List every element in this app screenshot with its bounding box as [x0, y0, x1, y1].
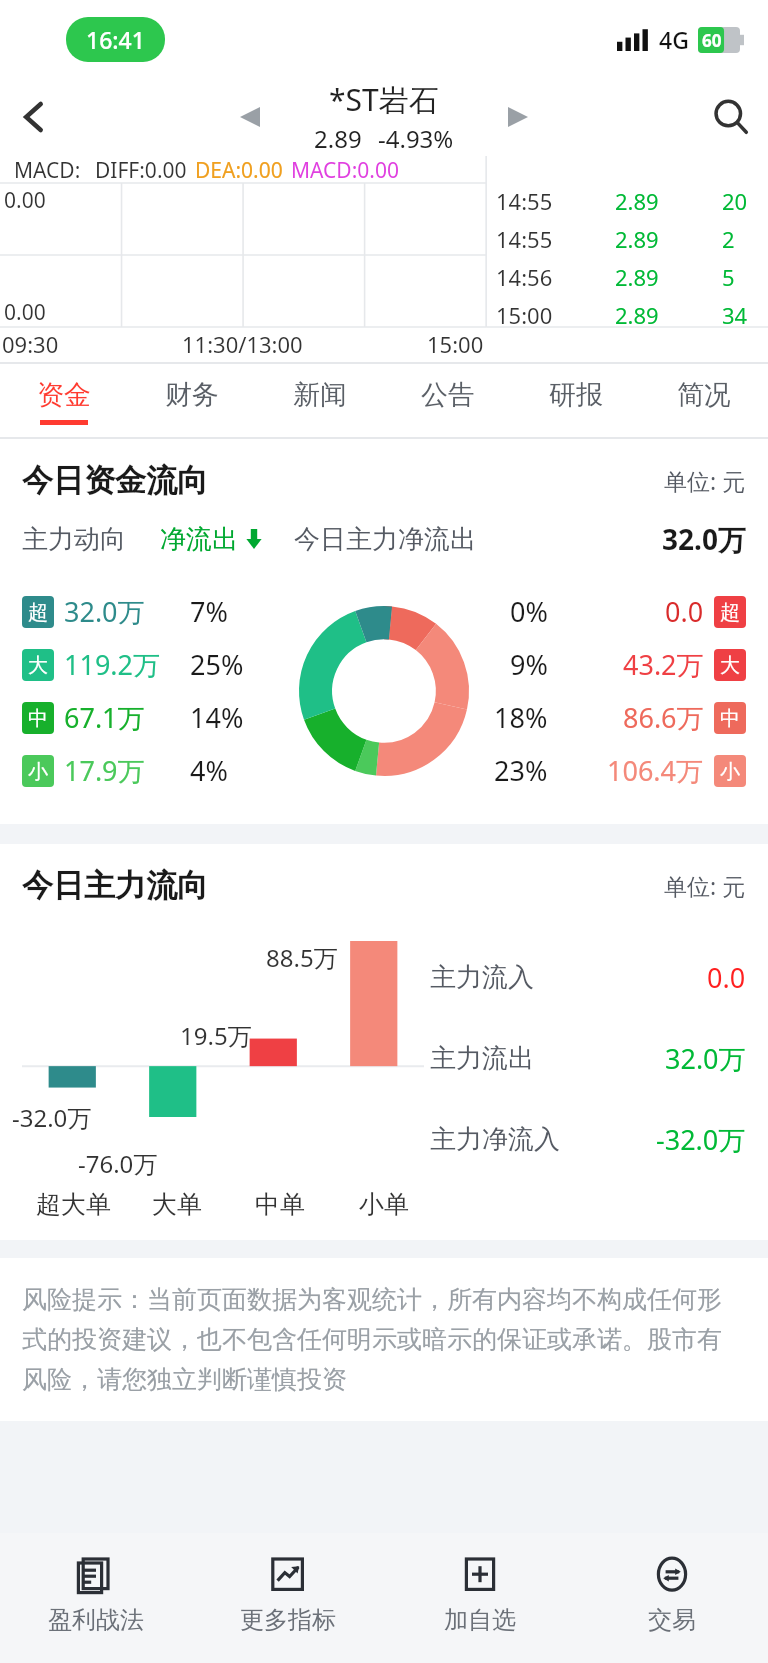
staticText: 研报 [549, 378, 603, 412]
staticText: 小 [28, 759, 48, 784]
staticText: 超 [28, 600, 48, 625]
staticText: 7% [190, 593, 228, 630]
button[interactable]: 财务 [128, 364, 256, 438]
staticText: 32.0万 [665, 1040, 746, 1077]
staticText: 11:30/13:00 [182, 329, 303, 359]
staticText: 单位: 元 [664, 870, 746, 901]
button[interactable]: 资金 [0, 364, 128, 438]
staticText: 0.0 [665, 593, 704, 630]
staticText: 0.00 [4, 186, 46, 215]
button[interactable]: 研报 [512, 364, 640, 438]
staticText: 小 [720, 759, 740, 784]
staticText: 14:55 [496, 224, 553, 254]
staticText: 超大单 [36, 1189, 111, 1220]
staticText: 中 [28, 706, 48, 731]
staticText: MACD:0.00 [291, 156, 399, 185]
staticText: 0% [510, 593, 548, 630]
staticText: 2.89 [615, 262, 659, 292]
staticText: 今日主力流向 [22, 866, 208, 905]
staticText: 0.00 [4, 298, 46, 327]
staticText: 20 [722, 186, 758, 216]
staticText: 主力流出 [430, 1042, 534, 1075]
staticText: 19.5万 [180, 1019, 252, 1052]
staticText: 9% [510, 646, 548, 683]
button[interactable]: 更多指标 [192, 1533, 384, 1663]
staticText: 风险提示：当前页面数据为客观统计，所有内容均不构成任何形式的投资建议，也不包含任… [22, 1284, 746, 1395]
staticText: -4.93% [378, 122, 454, 155]
staticText: MACD: [14, 156, 81, 185]
staticText: -32.0万 [656, 1121, 746, 1158]
staticText: 67.1万 [64, 699, 145, 736]
staticText: 5 [722, 262, 758, 292]
staticText: 106.4万 [607, 752, 704, 789]
staticText: 34 [722, 300, 758, 330]
staticText: DIFF:0.00 [95, 156, 187, 185]
button[interactable]: 公告 [384, 364, 512, 438]
button[interactable]: 新闻 [256, 364, 384, 438]
staticText: 主力净流入 [430, 1123, 560, 1156]
staticText: 单位: 元 [664, 465, 746, 496]
staticText: 32.0万 [662, 520, 746, 558]
staticText: 119.2万 [64, 646, 161, 683]
staticText: 2.89 [615, 224, 659, 254]
staticText: 交易 [648, 1605, 696, 1635]
staticText: 今日资金流向 [22, 461, 208, 500]
staticText: 中单 [255, 1189, 305, 1220]
button[interactable]: Back [0, 82, 70, 152]
staticText: 88.5万 [266, 941, 338, 974]
staticText: 16:41 [86, 24, 145, 55]
staticText: 0.0 [707, 959, 746, 996]
button[interactable]: 盈利战法 [0, 1533, 192, 1663]
staticText: 主力流入 [430, 961, 534, 994]
staticText: -76.0万 [78, 1147, 158, 1180]
staticText: 25% [190, 646, 244, 683]
staticText: 资金 [37, 378, 91, 412]
staticText: DEA:0.00 [195, 156, 283, 185]
staticText: 主力动向 [22, 523, 126, 556]
button[interactable]: 简况 [640, 364, 768, 438]
staticText: 2.89 [314, 122, 362, 155]
staticText: 净流出 [160, 523, 238, 556]
staticText: 14% [190, 699, 244, 736]
staticText: 财务 [165, 378, 219, 412]
button[interactable]: 加自选 [384, 1533, 576, 1663]
staticText: 盈利战法 [48, 1605, 144, 1635]
staticText: 23% [494, 752, 548, 789]
staticText: 小单 [359, 1189, 409, 1220]
staticText: 15:00 [496, 300, 553, 330]
button[interactable]: 交易 [576, 1533, 768, 1663]
staticText: 大 [28, 653, 48, 678]
staticText: 4% [190, 752, 228, 789]
staticText: 32.0万 [64, 593, 145, 630]
staticText: -32.0万 [12, 1101, 92, 1134]
staticText: *ST岩石 [329, 79, 439, 120]
staticText: 15:00 [427, 329, 484, 359]
button[interactable]: Previous stock [226, 93, 274, 141]
staticText: 中 [720, 706, 740, 731]
staticText: 14:56 [496, 262, 553, 292]
staticText: 17.9万 [64, 752, 145, 789]
staticText: 14:55 [496, 186, 553, 216]
button[interactable]: Search [694, 80, 768, 154]
staticText: 18% [494, 699, 548, 736]
staticText: 4G [659, 24, 689, 55]
staticText: 09:30 [2, 329, 59, 359]
staticText: 今日主力净流出 [294, 523, 476, 556]
staticText: 简况 [677, 378, 731, 412]
staticText: 新闻 [293, 378, 347, 412]
staticText: 86.6万 [623, 699, 704, 736]
staticText: 公告 [421, 378, 475, 412]
staticText: 加自选 [444, 1605, 516, 1635]
staticText: 43.2万 [623, 646, 704, 683]
staticText: 60 [702, 29, 722, 52]
staticText: 大单 [152, 1189, 202, 1220]
staticText: 2 [722, 224, 758, 254]
staticText: 更多指标 [240, 1605, 336, 1635]
staticText: 2.89 [615, 186, 659, 216]
staticText: 2.89 [615, 300, 659, 330]
button[interactable]: Next stock [494, 93, 542, 141]
staticText: 大 [720, 653, 740, 678]
staticText: 超 [720, 600, 740, 625]
